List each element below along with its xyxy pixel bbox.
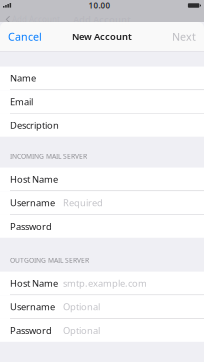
staticText: Add Account (73, 13, 131, 26)
staticText: Host Name (10, 173, 58, 185)
staticText: INCOMING MAIL SERVER (10, 152, 87, 161)
staticText: Cancel (8, 29, 42, 44)
button[interactable]: Password (0, 215, 204, 238)
staticText: Next (172, 29, 196, 44)
staticText: Username (10, 196, 55, 209)
staticText: Password (10, 324, 52, 336)
button[interactable]: Password (0, 319, 204, 342)
button[interactable]: Host Name (0, 168, 204, 191)
staticText: Add Account (12, 14, 60, 25)
button[interactable]: Email (0, 90, 204, 114)
staticText: Required (63, 196, 103, 209)
button[interactable]: Username (0, 295, 204, 319)
button[interactable]: Cancel (0, 22, 51, 51)
staticText: 10.00 (88, 0, 110, 11)
staticText: OUTGOING MAIL SERVER (10, 256, 89, 265)
staticText: Email (10, 95, 33, 108)
staticText: Host Name (10, 277, 58, 289)
staticText: New Account (72, 30, 132, 43)
staticText: Password (10, 220, 52, 232)
button[interactable]: Host Name (0, 272, 204, 295)
button[interactable]: Name (0, 66, 204, 90)
button[interactable]: Description (0, 114, 204, 137)
staticText: Optional (63, 300, 100, 313)
staticText: Username (10, 300, 55, 313)
staticText: Description (10, 119, 59, 131)
staticText: Optional (63, 324, 100, 336)
staticText: Name (10, 72, 36, 84)
button[interactable]: Username (0, 191, 204, 215)
button[interactable]: Next (163, 22, 204, 51)
staticText: smtp.example.com (63, 277, 147, 289)
